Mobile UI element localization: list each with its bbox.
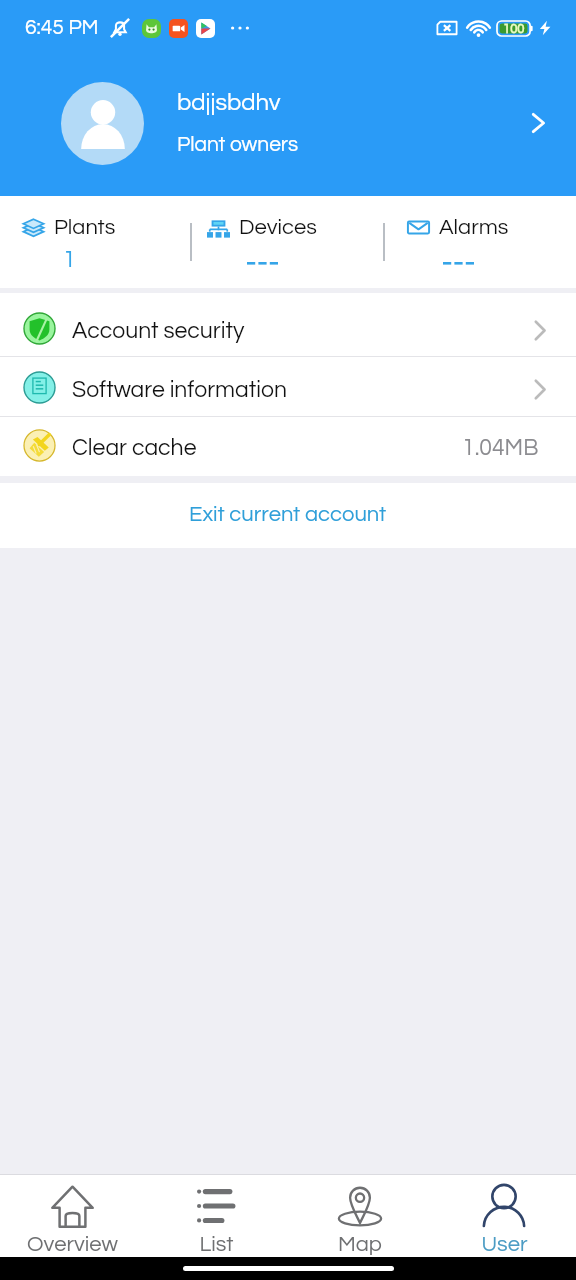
- staticText: Devices: [239, 216, 317, 239]
- button[interactable]: Account security: [0, 293, 576, 356]
- staticText: Alarms: [439, 216, 509, 239]
- staticText: Map: [338, 1233, 382, 1256]
- staticText: Software information: [72, 378, 287, 402]
- button[interactable]: Plants: [0, 196, 190, 288]
- staticText: 6:45 PM: [25, 17, 99, 39]
- staticText: Plants: [54, 216, 116, 239]
- staticText: Overview: [27, 1233, 118, 1256]
- button[interactable]: Devices: [192, 196, 383, 288]
- button[interactable]: List: [144, 1175, 288, 1257]
- button[interactable]: Overview: [0, 1175, 144, 1257]
- button[interactable]: Map: [288, 1175, 432, 1257]
- staticText: List: [199, 1233, 234, 1256]
- button[interactable]: Open profile: [520, 105, 556, 141]
- button[interactable]: Clear cache: [0, 417, 576, 476]
- staticText: Exit current account: [189, 503, 387, 526]
- button[interactable]: User: [432, 1175, 576, 1257]
- button[interactable]: Exit current account: [0, 483, 576, 548]
- staticText: User: [481, 1233, 528, 1256]
- staticText: bdjjsbdhv: [177, 90, 281, 115]
- button[interactable]: Alarms: [385, 196, 576, 288]
- staticText: 1: [63, 248, 76, 272]
- button[interactable]: Software information: [0, 357, 576, 416]
- staticText: 1.04MB: [462, 436, 539, 460]
- staticText: Clear cache: [72, 436, 197, 460]
- staticText: Account security: [72, 319, 245, 343]
- staticText: Plant owners: [177, 134, 299, 156]
- button[interactable]: bdjjsbdhv: [0, 53, 576, 193]
- staticText: 100: [503, 22, 525, 35]
